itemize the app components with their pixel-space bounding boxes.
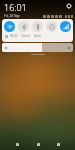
button[interactable]: Mobile data (60, 21, 71, 32)
button[interactable]: Do not disturb (46, 21, 57, 32)
staticText: Fri, 23 Sep (4, 14, 20, 18)
button[interactable]: Brightness (2, 43, 73, 52)
button[interactable]: Flashlight (32, 21, 43, 32)
staticText: 16:01 (4, 1, 27, 13)
button[interactable]: Home (34, 140, 42, 148)
button[interactable]: Settings (66, 3, 72, 9)
button[interactable]: Back (13, 140, 21, 148)
button[interactable]: Wi-Fi (4, 21, 15, 32)
staticText: Wi-Fi · Silent · Auto (10, 34, 42, 38)
button[interactable]: Recents (54, 140, 62, 148)
button[interactable]: Bluetooth (18, 21, 29, 32)
